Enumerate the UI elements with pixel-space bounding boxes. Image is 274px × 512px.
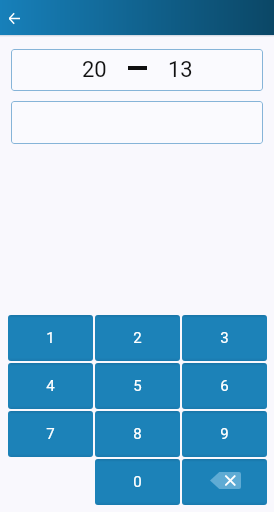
- staticText: 13: [168, 57, 193, 83]
- staticText: 1: [46, 329, 55, 347]
- staticText: 2: [133, 329, 142, 347]
- staticText: 6: [220, 377, 229, 395]
- button[interactable]: 8: [95, 411, 180, 457]
- staticText: 9: [220, 425, 229, 443]
- button[interactable]: 7: [8, 411, 93, 457]
- button[interactable]: 5: [95, 363, 180, 409]
- staticText: 7: [46, 425, 55, 443]
- staticText: 3: [220, 329, 229, 347]
- button[interactable]: 1: [8, 315, 93, 361]
- button[interactable]: 6: [182, 363, 267, 409]
- button[interactable]: Backspace: [182, 459, 267, 505]
- button[interactable]: 3: [182, 315, 267, 361]
- staticText: 0: [133, 473, 142, 491]
- button[interactable]: 0: [95, 459, 180, 505]
- staticText: 4: [46, 377, 55, 395]
- staticText: 5: [133, 377, 142, 395]
- button[interactable]: 2: [95, 315, 180, 361]
- button[interactable]: 9: [182, 411, 267, 457]
- staticText: 8: [133, 425, 142, 443]
- button[interactable]: Back: [0, 4, 28, 32]
- staticText: 20: [82, 57, 107, 83]
- button[interactable]: 4: [8, 363, 93, 409]
